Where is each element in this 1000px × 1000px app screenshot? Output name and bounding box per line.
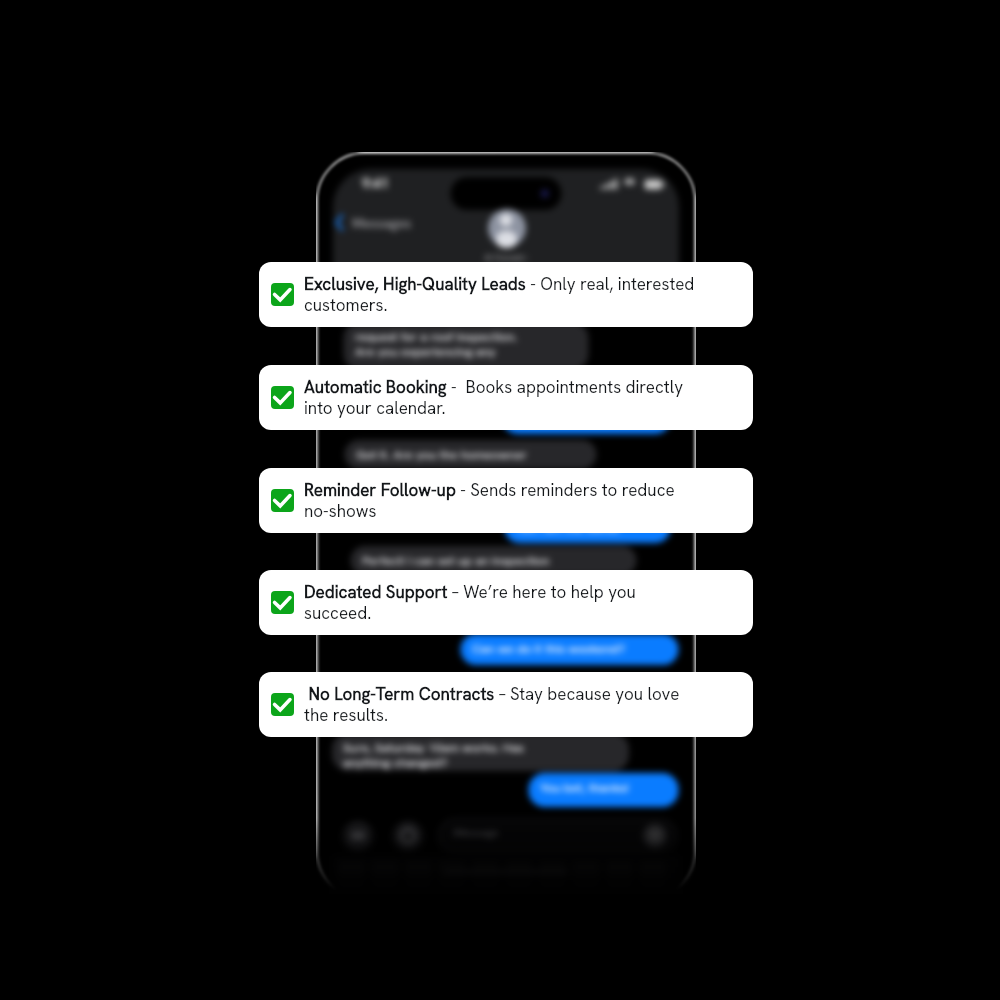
button[interactable]: Included [259,262,753,327]
staticText: request for a roof inspection. Are you e… [355,328,580,359]
other: Included [271,283,294,306]
staticText: iMessage [453,826,499,840]
staticText: Messages [352,214,412,232]
staticText: Al Donald › [456,252,556,264]
staticText: You bet, thanks! [540,779,670,795]
other: Included [271,591,294,614]
staticText: Got it. Are you the homeowner [356,446,588,462]
staticText: Dedicated Support – We’re here to help y… [304,581,702,624]
staticText: Exclusive, High-Quality Leads - Only rea… [304,273,702,316]
button[interactable]: Included [259,468,753,533]
button[interactable]: Included [259,365,753,430]
staticText: Automatic Booking - Books appointments d… [304,376,702,419]
staticText: No Long-Term Contracts – Stay because yo… [304,683,702,726]
button[interactable]: Included [259,672,753,737]
button[interactable]: Included [259,570,753,635]
staticText: Yes I am the owner [516,519,662,535]
other: Included [271,386,294,409]
other: Included [271,489,294,512]
staticText: Reminder Follow-up - Sends reminders to … [304,479,702,522]
staticText: Can we do it this weekend? [472,640,670,656]
other: Included [271,693,294,716]
staticText: Perfect! I can set up an inspection [362,552,628,568]
staticText: 9:41 [362,174,389,192]
staticText: Sure, Saturday 10am works. Has anything … [343,739,620,770]
